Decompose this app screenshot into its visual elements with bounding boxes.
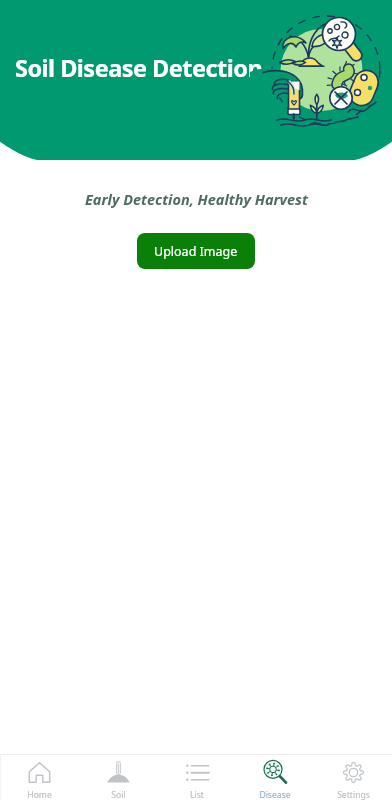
other: List	[186, 761, 209, 784]
staticText: Soil Disease Detection	[15, 52, 263, 84]
staticText: Soil	[111, 789, 126, 800]
button[interactable]: Home	[0, 755, 79, 800]
staticText: List	[190, 789, 204, 800]
staticText: Early Detection, Healthy Harvest	[85, 189, 308, 209]
other: Home	[28, 761, 51, 784]
staticText: Upload Image	[154, 243, 238, 260]
staticText: Settings	[337, 789, 370, 800]
staticText: Disease	[259, 789, 291, 800]
other: Disease	[264, 761, 287, 784]
other: Settings	[342, 761, 365, 784]
button[interactable]: List	[158, 755, 236, 800]
button[interactable]: Settings	[314, 755, 392, 800]
button[interactable]: Soil	[79, 755, 158, 800]
staticText: Home	[27, 789, 52, 800]
button[interactable]: Upload Image	[137, 233, 255, 269]
other: Soil	[107, 761, 130, 784]
button[interactable]: Disease	[236, 755, 314, 800]
